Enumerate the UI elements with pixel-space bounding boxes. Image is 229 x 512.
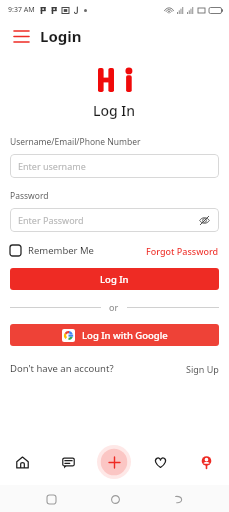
button[interactable]: Enter username <box>10 154 219 178</box>
staticText: Log In <box>100 273 129 286</box>
staticText: 9:37 AM <box>8 5 35 15</box>
staticText: Sign Up <box>186 363 219 375</box>
button[interactable]: Log In <box>10 268 219 290</box>
button[interactable]: Home <box>103 487 127 511</box>
staticText: Login <box>40 26 82 46</box>
button[interactable]: Favorites <box>137 439 183 485</box>
staticText: or <box>109 301 119 313</box>
button[interactable]: Messages <box>45 439 91 485</box>
button[interactable]: Remember Me <box>10 244 94 257</box>
button[interactable]: Add new <box>91 439 137 485</box>
staticText: Forgot Password <box>146 245 219 257</box>
button[interactable]: Forgot Password <box>146 245 219 257</box>
button[interactable]: Open navigation menu <box>8 23 34 49</box>
button[interactable]: Sign Up <box>186 363 219 375</box>
staticText: Username/Email/Phone Number <box>10 136 141 148</box>
staticText: Remember Me <box>28 244 94 257</box>
staticText: Password <box>10 190 49 202</box>
button[interactable]: Log In with Google <box>10 324 219 346</box>
staticText: Enter username <box>18 160 86 172</box>
staticText: Log In with Google <box>82 329 168 342</box>
button[interactable]: Recent apps <box>39 487 63 511</box>
button[interactable]: Show password <box>197 213 211 227</box>
button[interactable]: Enter Password <box>10 208 219 232</box>
staticText: Log In <box>93 101 136 120</box>
button[interactable]: Profile <box>183 439 229 485</box>
staticText: Don't have an account? <box>10 362 114 375</box>
button[interactable]: Back <box>166 487 190 511</box>
staticText: Enter Password <box>18 214 84 226</box>
button[interactable]: Home <box>0 439 45 485</box>
